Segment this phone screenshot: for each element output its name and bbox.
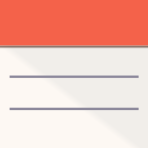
button[interactable]: Open note	[0, 0, 148, 148]
